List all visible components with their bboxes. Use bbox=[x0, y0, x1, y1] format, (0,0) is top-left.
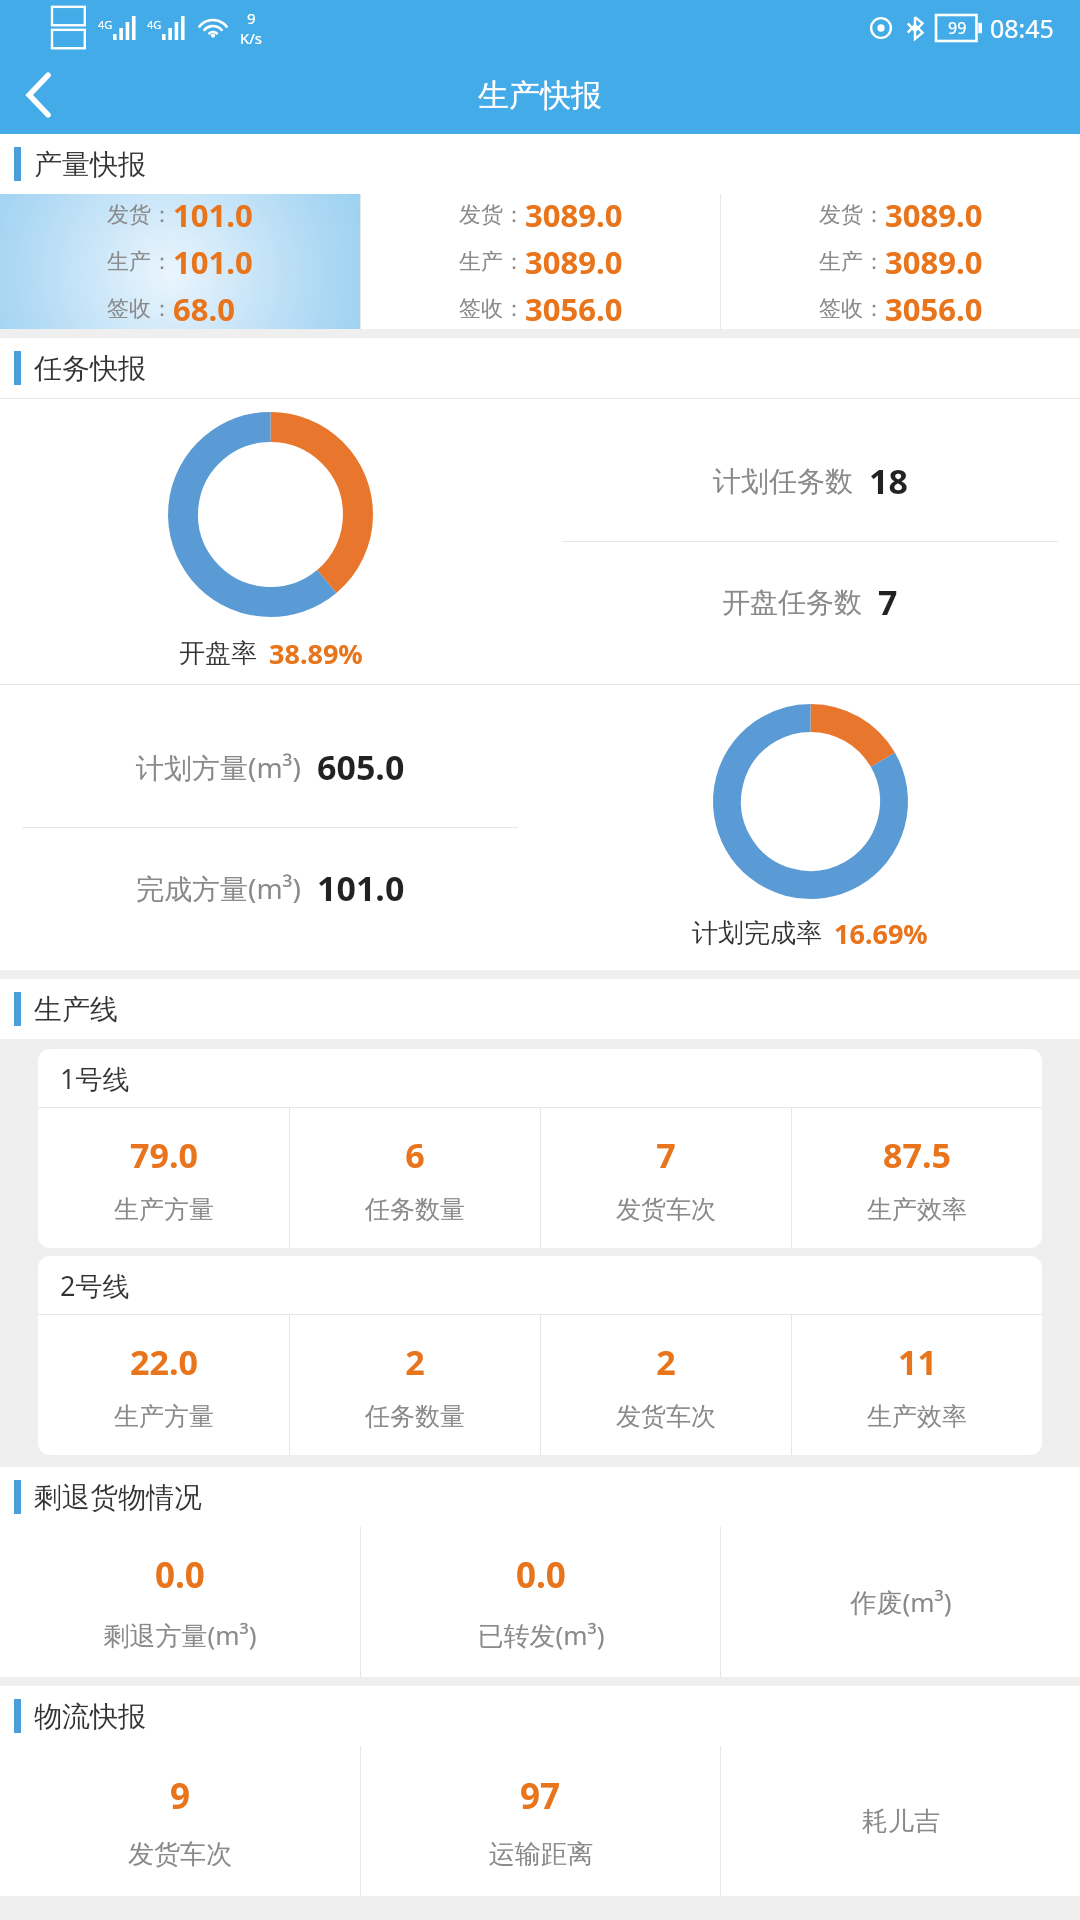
staticText: 签收： bbox=[459, 295, 525, 323]
staticText: 4G bbox=[147, 17, 162, 32]
staticText: 2号线 bbox=[60, 1267, 130, 1304]
staticText: 生产： bbox=[459, 248, 525, 276]
staticText: 0.0 bbox=[155, 1551, 205, 1599]
staticText: 生产方量 bbox=[114, 1401, 214, 1432]
staticText: 22.0 bbox=[130, 1339, 198, 1385]
staticText: 3089.0 bbox=[525, 241, 623, 283]
button[interactable]: 0.0 bbox=[0, 1527, 360, 1677]
staticText: 3089.0 bbox=[885, 241, 983, 283]
staticText: 发货车次 bbox=[616, 1194, 716, 1225]
staticText: 签收： bbox=[107, 295, 173, 323]
staticText: 产量快报 bbox=[34, 147, 146, 182]
staticText: 发货： bbox=[819, 201, 885, 229]
staticText: 0.0 bbox=[516, 1551, 566, 1599]
staticText: 物流快报 bbox=[34, 1699, 146, 1734]
staticText: 97 bbox=[520, 1772, 561, 1820]
staticText: 4G bbox=[98, 17, 113, 32]
staticText: 3056.0 bbox=[885, 288, 983, 329]
staticText: 2 bbox=[656, 1339, 676, 1385]
button[interactable]: 发货： bbox=[721, 194, 1080, 329]
staticText: 生产线 bbox=[34, 992, 118, 1027]
staticText: 生产： bbox=[107, 248, 173, 276]
staticText: 9 bbox=[247, 8, 256, 28]
button[interactable]: 耗儿吉 bbox=[721, 1746, 1080, 1896]
button[interactable]: 1号线 bbox=[38, 1049, 1042, 1248]
staticText: 发货车次 bbox=[616, 1401, 716, 1432]
staticText: 签收： bbox=[819, 295, 885, 323]
staticText: 已转发(m³) bbox=[477, 1617, 605, 1653]
button[interactable]: 9 bbox=[0, 1746, 360, 1896]
staticText: 3089.0 bbox=[525, 194, 623, 236]
staticText: 38.89% bbox=[269, 635, 363, 672]
staticText: 101.0 bbox=[173, 194, 253, 236]
staticText: 计划完成率 bbox=[692, 917, 822, 950]
staticText: 开盘任务数 bbox=[722, 585, 862, 620]
staticText: K/s bbox=[240, 28, 263, 48]
button[interactable]: 发货： bbox=[0, 194, 360, 329]
staticText: 发货： bbox=[459, 201, 525, 229]
staticText: 发货车次 bbox=[128, 1838, 232, 1871]
button[interactable]: Back bbox=[0, 56, 78, 134]
staticText: 87.5 bbox=[883, 1132, 951, 1178]
staticText: 剩退货物情况 bbox=[34, 1480, 202, 1515]
staticText: 16.69% bbox=[834, 915, 928, 952]
staticText: 发货： bbox=[107, 201, 173, 229]
staticText: 101.0 bbox=[173, 241, 253, 283]
staticText: 计划任务数 bbox=[713, 464, 853, 499]
staticText: 1号线 bbox=[60, 1060, 130, 1097]
staticText: 任务数量 bbox=[365, 1194, 465, 1225]
button[interactable]: 2号线 bbox=[38, 1256, 1042, 1455]
staticText: 605.0 bbox=[317, 744, 405, 790]
staticText: 2 bbox=[405, 1339, 425, 1385]
staticText: 生产效率 bbox=[867, 1194, 967, 1225]
staticText: 剩退方量(m³) bbox=[103, 1617, 257, 1653]
staticText: 9 bbox=[170, 1772, 191, 1820]
staticText: 7 bbox=[656, 1132, 676, 1178]
button[interactable]: 0.0 bbox=[361, 1527, 720, 1677]
button[interactable]: 发货： bbox=[361, 194, 720, 329]
staticText: 08:45 bbox=[990, 11, 1054, 45]
staticText: 生产： bbox=[819, 248, 885, 276]
staticText: 3056.0 bbox=[525, 288, 623, 329]
staticText: 11 bbox=[898, 1339, 937, 1385]
staticText: 79.0 bbox=[130, 1132, 198, 1178]
staticText: 任务数量 bbox=[365, 1401, 465, 1432]
staticText: 完成方量(m³) bbox=[136, 869, 301, 907]
staticText: 生产效率 bbox=[867, 1401, 967, 1432]
staticText: 18 bbox=[869, 458, 908, 504]
staticText: 生产方量 bbox=[114, 1194, 214, 1225]
staticText: 7 bbox=[878, 579, 898, 625]
button[interactable]: 作废(m³) bbox=[721, 1527, 1080, 1677]
button[interactable]: 完成方量(m³) bbox=[0, 828, 540, 948]
staticText: 3089.0 bbox=[885, 194, 983, 236]
staticText: 99 bbox=[948, 17, 967, 39]
button[interactable]: 97 bbox=[361, 1746, 720, 1896]
staticText: 运输距离 bbox=[489, 1838, 593, 1871]
staticText: 作废(m³) bbox=[850, 1584, 952, 1620]
button[interactable]: 计划任务数 bbox=[540, 421, 1080, 541]
staticText: 任务快报 bbox=[34, 351, 146, 386]
staticText: 耗儿吉 bbox=[862, 1805, 940, 1838]
staticText: 6 bbox=[405, 1132, 425, 1178]
button[interactable]: 开盘任务数 bbox=[540, 542, 1080, 662]
staticText: 计划方量(m³) bbox=[136, 748, 301, 786]
staticText: 101.0 bbox=[317, 865, 405, 911]
staticText: 68.0 bbox=[173, 288, 235, 329]
staticText: 开盘率 bbox=[179, 637, 257, 670]
button[interactable]: 计划方量(m³) bbox=[0, 707, 540, 827]
staticText: 生产快报 bbox=[478, 76, 602, 115]
